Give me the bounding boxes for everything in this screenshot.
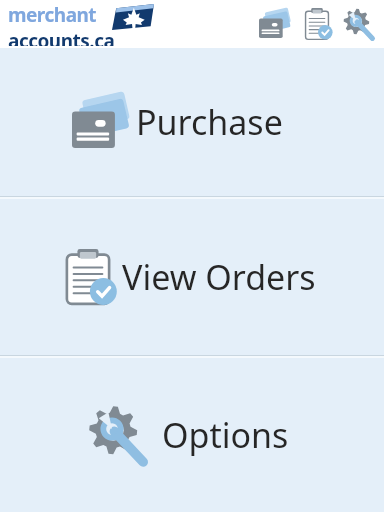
button[interactable]: View Orders [296, 3, 338, 45]
staticText: View Orders [122, 254, 316, 300]
button[interactable]: Options [338, 3, 380, 45]
button[interactable]: Purchase [0, 48, 384, 196]
staticText: Purchase [136, 99, 283, 145]
staticText: Options [162, 412, 289, 458]
button[interactable]: Options [0, 358, 384, 512]
button[interactable]: View Orders [0, 199, 384, 355]
staticText: merchant [8, 2, 97, 28]
button[interactable]: Purchase [254, 3, 296, 45]
button[interactable]: merchant [8, 2, 156, 46]
staticText: accounts.ca [8, 28, 115, 46]
